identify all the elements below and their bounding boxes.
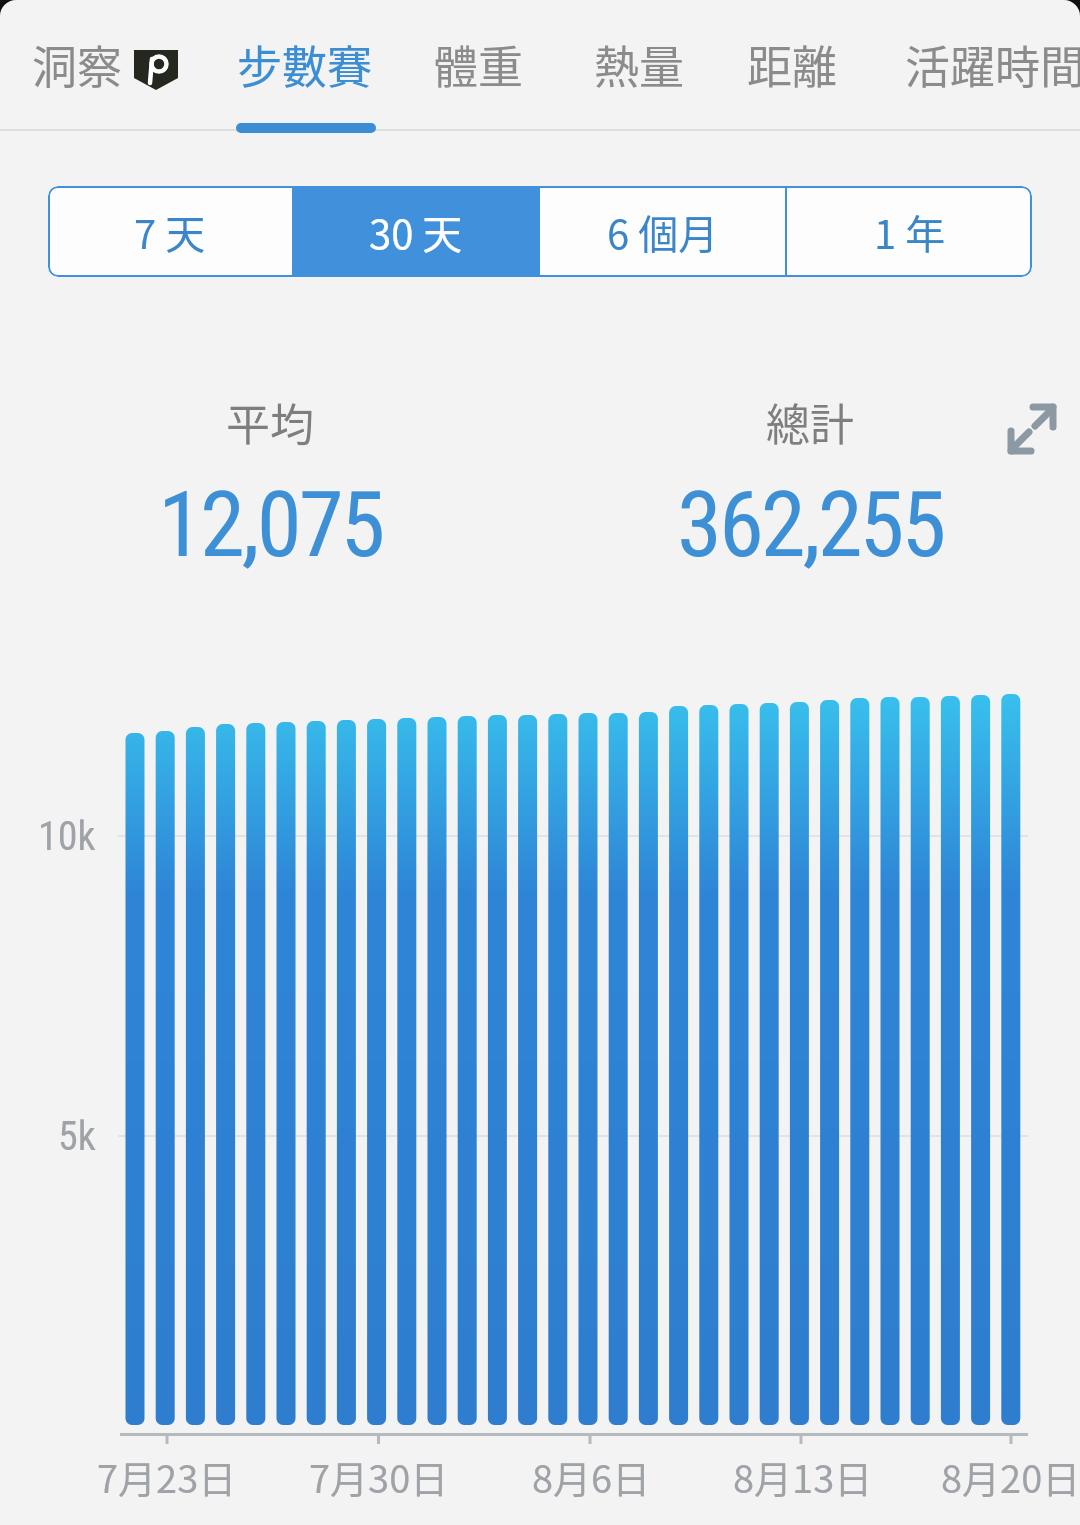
staticText: 362,255 <box>677 472 944 579</box>
staticText: 8月6日 <box>532 1449 651 1504</box>
button[interactable]: 7 天 <box>48 186 292 277</box>
button[interactable]: 距離 <box>747 0 838 128</box>
button[interactable]: 1 年 <box>787 186 1032 277</box>
staticText: 7月23日 <box>97 1449 237 1504</box>
staticText: 1 年 <box>874 203 946 261</box>
button[interactable]: 30 天 <box>294 186 538 277</box>
button[interactable]: 體重 <box>433 0 524 128</box>
staticText: 活躍時間 <box>905 32 1080 97</box>
staticText: 6 個月 <box>607 203 719 261</box>
button[interactable]: 洞察 <box>32 0 123 128</box>
staticText: 5k <box>58 1113 96 1160</box>
staticText: 30 天 <box>369 203 463 261</box>
staticText: 8月13日 <box>733 1449 873 1504</box>
staticText: 12,075 <box>158 472 383 579</box>
staticText: 距離 <box>747 32 838 97</box>
staticText: 7 天 <box>134 203 206 261</box>
staticText: 總計 <box>766 390 854 454</box>
staticText: 體重 <box>433 32 524 97</box>
staticText: 平均 <box>226 390 314 454</box>
button[interactable]: 活躍時間 <box>905 0 1080 128</box>
staticText: 熱量 <box>594 32 685 97</box>
staticText: 10k <box>38 813 96 860</box>
staticText: 8月20日 <box>941 1449 1080 1504</box>
button[interactable]: 步數賽 <box>237 0 373 128</box>
staticText: 7月30日 <box>309 1449 449 1504</box>
button[interactable]: 熱量 <box>594 0 685 128</box>
staticText: 步數賽 <box>237 32 373 97</box>
button[interactable] <box>996 392 1072 468</box>
button[interactable]: 6 個月 <box>540 186 785 277</box>
staticText: 洞察 <box>32 32 123 97</box>
